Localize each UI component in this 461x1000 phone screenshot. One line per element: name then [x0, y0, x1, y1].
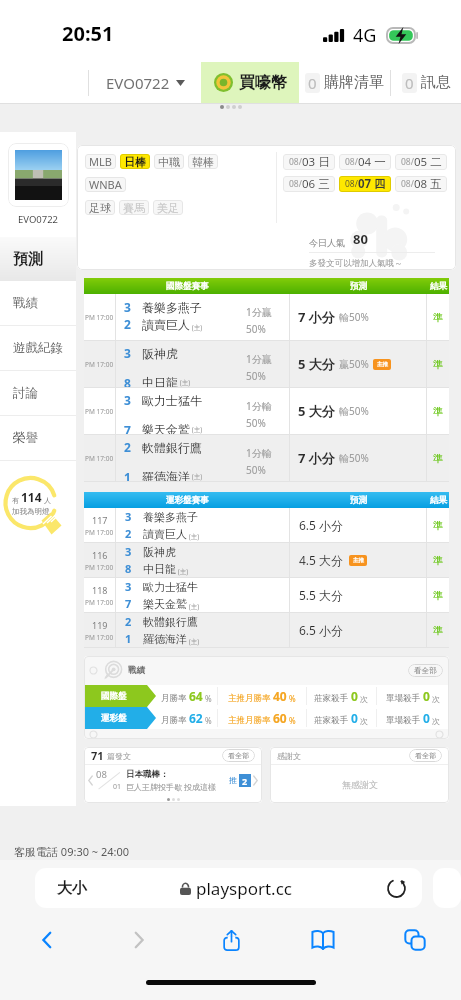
staticText: 0	[351, 710, 358, 726]
staticText: 準	[433, 519, 443, 532]
button[interactable]: 08/	[339, 154, 391, 170]
staticText: 4.5 大分	[299, 552, 344, 568]
staticText: 榮譽	[13, 430, 38, 446]
staticText: 國際盤	[101, 691, 127, 702]
staticText: 80	[353, 230, 368, 248]
button[interactable]: 討論	[0, 371, 76, 416]
staticText: 05 二	[414, 154, 442, 170]
staticText: PM 17:00	[85, 563, 114, 572]
button[interactable]: 0	[299, 62, 390, 103]
staticText: 08/	[289, 156, 302, 168]
button[interactable]: Tabs	[369, 922, 461, 958]
button[interactable]: MLB	[85, 154, 116, 169]
button[interactable]: EVO0722	[89, 62, 201, 103]
button[interactable]: WNBA	[85, 177, 126, 192]
button[interactable]: 看全部	[409, 749, 442, 762]
staticText: 0	[351, 688, 358, 704]
staticText: 08/	[401, 156, 414, 168]
staticText: 3	[124, 299, 131, 315]
button[interactable]: 看全部	[222, 749, 255, 762]
staticText: 5.5 大分	[299, 587, 344, 603]
button[interactable]: 0	[391, 62, 461, 103]
staticText: 主推月勝率	[228, 714, 273, 726]
button[interactable]: Reload	[386, 878, 406, 898]
button[interactable]: 買嚎幣	[201, 62, 299, 103]
staticText: 中職	[158, 155, 180, 169]
button[interactable]: 08/	[339, 176, 391, 192]
staticText: 韓棒	[192, 155, 214, 169]
button[interactable]: 大小	[35, 868, 422, 908]
staticText: 預測	[13, 250, 43, 269]
staticText: 1	[124, 469, 131, 481]
staticText: 輸50%	[339, 404, 369, 418]
staticText: 運彩盤	[101, 713, 127, 724]
button[interactable]: 日棒	[120, 154, 150, 169]
staticText: 中日龍	[142, 375, 178, 387]
staticText: 加我為明燈	[12, 507, 50, 516]
button[interactable]: 韓棒	[188, 154, 218, 169]
staticText: 歐力士猛牛	[142, 393, 202, 408]
staticText: 準	[433, 624, 443, 637]
staticText: 歐力士猛牛	[143, 580, 198, 594]
staticText: 客服電話 09:30 ~ 24:00	[14, 844, 130, 859]
staticText: 預測	[350, 495, 367, 506]
staticText: 戰績	[128, 665, 145, 676]
button[interactable]: 看全部	[408, 664, 443, 677]
staticText: 足球	[89, 201, 111, 215]
staticText: 有	[12, 496, 19, 505]
button[interactable]: 戰績	[0, 281, 76, 326]
button[interactable]: 足球	[85, 200, 115, 215]
staticText: 60	[273, 710, 287, 726]
staticText: PM 17:00	[85, 407, 114, 416]
staticText: 71	[91, 748, 104, 763]
staticText: 主推月勝率	[228, 692, 273, 704]
staticText: 次	[430, 693, 441, 704]
button[interactable]: 08/	[395, 176, 447, 192]
staticText: PM 17:00	[85, 633, 114, 642]
staticText: 日棒	[124, 155, 146, 169]
staticText: (主)	[190, 472, 203, 481]
button[interactable]: 賽馬	[119, 200, 149, 215]
staticText: 無感謝文	[342, 779, 378, 790]
staticText: 國際盤賽事	[166, 281, 209, 292]
staticText: 50%	[246, 463, 266, 477]
staticText: 0	[308, 73, 317, 93]
staticText: 討論	[13, 385, 38, 401]
staticText: 0	[423, 688, 430, 704]
staticText: 50%	[246, 322, 266, 336]
button[interactable]: 遊戲紀錄	[0, 326, 76, 371]
button[interactable]: 08/	[395, 154, 447, 170]
button[interactable]: 08/	[283, 154, 335, 170]
button[interactable]: Share	[185, 922, 277, 958]
staticText: 羅德海洋	[143, 632, 187, 646]
staticText: 養樂多燕子	[143, 510, 198, 524]
staticText: (主)	[176, 567, 189, 576]
button[interactable]: Back	[0, 922, 93, 958]
staticText: (主)	[190, 323, 203, 332]
staticText: EVO0722	[18, 213, 59, 226]
staticText: 月勝率	[161, 714, 189, 726]
staticText: 04 一	[358, 154, 386, 170]
button[interactable]: 美足	[153, 200, 183, 215]
button[interactable]: Bookmarks	[277, 922, 369, 958]
staticText: 看全部	[228, 751, 249, 760]
staticText: 08/	[289, 178, 302, 190]
button[interactable]: 08/	[283, 176, 335, 192]
staticText: 羅德海洋	[142, 469, 190, 481]
staticText: 巨人王牌投手歇 投成這樣	[126, 781, 217, 792]
staticText: 贏50%	[339, 357, 369, 371]
staticText: 1分贏	[246, 352, 272, 366]
staticText: 117	[92, 514, 108, 526]
staticText: 2	[242, 775, 248, 787]
staticText: (主)	[187, 602, 200, 611]
staticText: 大小	[57, 879, 87, 898]
button[interactable]: Forward	[93, 922, 185, 958]
staticText: 阪神虎	[142, 346, 178, 361]
staticText: 莊家殺手	[314, 714, 351, 726]
staticText: 遊戲紀錄	[13, 340, 63, 356]
staticText: 中日龍	[143, 562, 176, 576]
button[interactable]: 中職	[154, 154, 184, 169]
button[interactable]: 榮譽	[0, 416, 76, 461]
staticText: 準	[433, 452, 443, 465]
staticText: 08	[96, 768, 107, 781]
